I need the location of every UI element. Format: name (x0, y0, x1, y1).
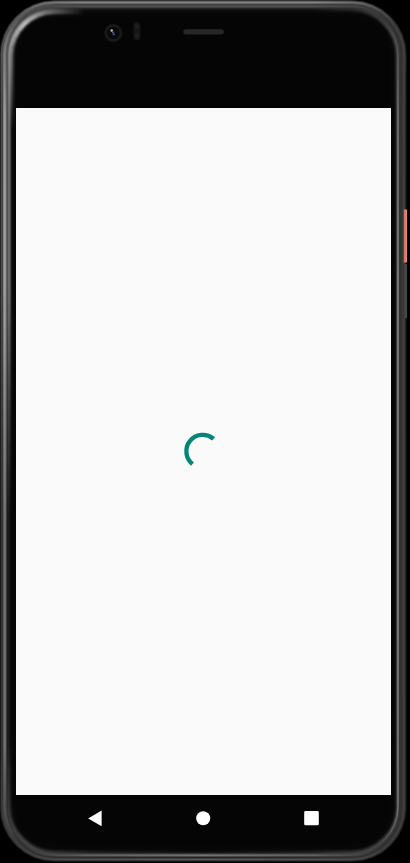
button[interactable]: Back (65, 801, 125, 837)
button[interactable]: Home (173, 801, 233, 837)
button[interactable]: Power (399, 206, 410, 266)
button[interactable]: Recent apps (281, 801, 341, 837)
button[interactable]: Volume (399, 262, 410, 320)
